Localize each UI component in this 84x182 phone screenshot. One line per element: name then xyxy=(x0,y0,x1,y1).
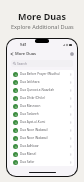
button[interactable]: Dua Dhikr (Dhikr) xyxy=(10,94,74,102)
button[interactable]: Dua Qunoot-e-Naazilah xyxy=(10,86,74,94)
button[interactable]: Dua Adhkaar xyxy=(10,142,74,150)
button[interactable]: Dua Tasbeeh xyxy=(10,110,74,118)
staticText: Dua Noor (Nabawi) xyxy=(20,128,69,132)
staticText: Dua Manzil xyxy=(20,152,69,156)
staticText: Dua Tasbeeh xyxy=(20,112,69,116)
button[interactable]: Dua Noor (Nabawi) xyxy=(10,126,74,134)
staticText: Dua Noor (Nabawi) xyxy=(20,136,69,140)
button[interactable]: Search xyxy=(11,60,73,67)
button[interactable]: Dua Safar xyxy=(10,158,74,166)
button[interactable]: Dua Masnoon xyxy=(10,102,74,110)
button[interactable]: Settings xyxy=(69,51,74,56)
staticText: Dua Dhikr (Dhikr) xyxy=(20,96,69,100)
staticText: 9:41 xyxy=(20,43,27,47)
button[interactable]: Back xyxy=(10,51,37,56)
button[interactable]: Dua Istikhara xyxy=(10,78,74,86)
staticText: Search xyxy=(17,62,28,66)
staticText: Dua Before Prayer (Wudhu) xyxy=(20,72,69,76)
staticText: Dua Safar xyxy=(20,160,69,164)
staticText: More Duas xyxy=(15,51,37,56)
button[interactable]: Dua Noor (Nabawi) xyxy=(10,134,74,142)
button[interactable]: Dua Manzil xyxy=(10,150,74,158)
staticText: Dua Masnoon xyxy=(20,104,69,108)
button[interactable]: Dua Ayat-ul-Kursi xyxy=(10,118,74,126)
button[interactable]: Dua Before Prayer (Wudhu) xyxy=(10,70,74,78)
staticText: Dua Ayat-ul-Kursi xyxy=(20,120,69,124)
staticText: Dua Qunoot-e-Naazilah xyxy=(20,88,69,92)
staticText: Explore Additional Duas xyxy=(11,23,74,31)
staticText: Dua Istikhara xyxy=(20,80,69,84)
staticText: Dua Adhkaar xyxy=(20,144,69,148)
staticText: More Duas xyxy=(18,10,67,22)
